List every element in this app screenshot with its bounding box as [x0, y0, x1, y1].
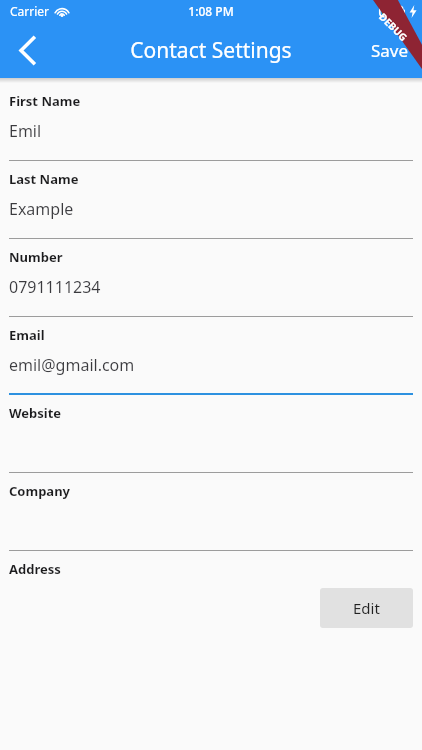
- button[interactable]: First Name: [9, 83, 413, 161]
- staticText: Contact Settings: [130, 36, 292, 65]
- button[interactable]: Edit: [320, 588, 413, 628]
- button[interactable]: Last Name: [9, 161, 413, 239]
- staticText: Email: [9, 326, 45, 344]
- staticText: Emil: [9, 120, 42, 142]
- staticText: Address: [9, 560, 61, 578]
- staticText: Last Name: [9, 170, 79, 188]
- staticText: 0791111234: [9, 276, 101, 298]
- staticText: Company: [9, 482, 71, 500]
- button[interactable]: Back: [0, 23, 54, 77]
- staticText: Example: [9, 198, 74, 220]
- staticText: emil@gmail.com: [9, 354, 135, 376]
- staticText: Number: [9, 248, 63, 266]
- staticText: 1:08 PM: [188, 3, 234, 19]
- staticText: Carrier: [10, 3, 50, 19]
- button[interactable]: Company: [9, 473, 413, 551]
- staticText: DEBUG: [376, 10, 411, 44]
- staticText: Edit: [353, 598, 380, 618]
- staticText: Website: [9, 404, 62, 422]
- button[interactable]: Save: [358, 23, 422, 77]
- button[interactable]: Number: [9, 239, 413, 317]
- button[interactable]: Email: [9, 317, 413, 395]
- button[interactable]: Website: [9, 395, 413, 473]
- staticText: First Name: [9, 92, 81, 110]
- staticText: Save: [371, 39, 409, 62]
